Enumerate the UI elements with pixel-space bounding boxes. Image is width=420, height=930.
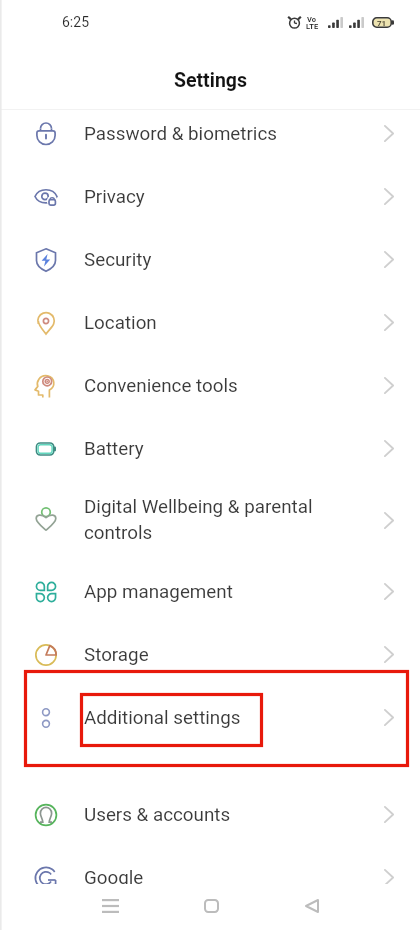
button[interactable]: Location [0, 291, 420, 354]
staticText: Security [84, 249, 152, 271]
staticText: Battery [84, 438, 144, 460]
button[interactable]: Back [288, 883, 336, 929]
button[interactable]: Security [0, 228, 420, 291]
button[interactable]: Storage [0, 623, 420, 686]
staticText: App management [84, 581, 233, 603]
staticText: Password & biometrics [84, 123, 277, 145]
staticText: Google [84, 867, 144, 889]
staticText: Additional settings [84, 707, 241, 729]
button[interactable]: Privacy [0, 165, 420, 228]
staticText: Vo [307, 15, 316, 24]
staticText: Digital Wellbeing & parental controls [84, 496, 336, 544]
staticText: Storage [84, 644, 149, 666]
button[interactable]: Battery [0, 417, 420, 480]
button[interactable]: Additional settings [0, 686, 420, 749]
staticText: 71 [377, 19, 387, 28]
staticText: LTE [306, 22, 319, 31]
staticText: 6:25 [62, 14, 89, 30]
staticText: Settings [174, 69, 247, 92]
button[interactable]: Google [0, 846, 420, 909]
button[interactable]: Password & biometrics [0, 102, 420, 165]
staticText: Location [84, 312, 157, 334]
staticText: Privacy [84, 186, 145, 208]
button[interactable]: Digital Wellbeing & parental controls [0, 480, 420, 560]
button[interactable]: Home [187, 883, 235, 929]
staticText: Users & accounts [84, 804, 231, 826]
button[interactable]: Convenience tools [0, 354, 420, 417]
staticText: Convenience tools [84, 375, 238, 397]
button[interactable]: Users & accounts [0, 783, 420, 846]
button[interactable]: Recent apps [86, 883, 134, 929]
button[interactable]: App management [0, 560, 420, 623]
